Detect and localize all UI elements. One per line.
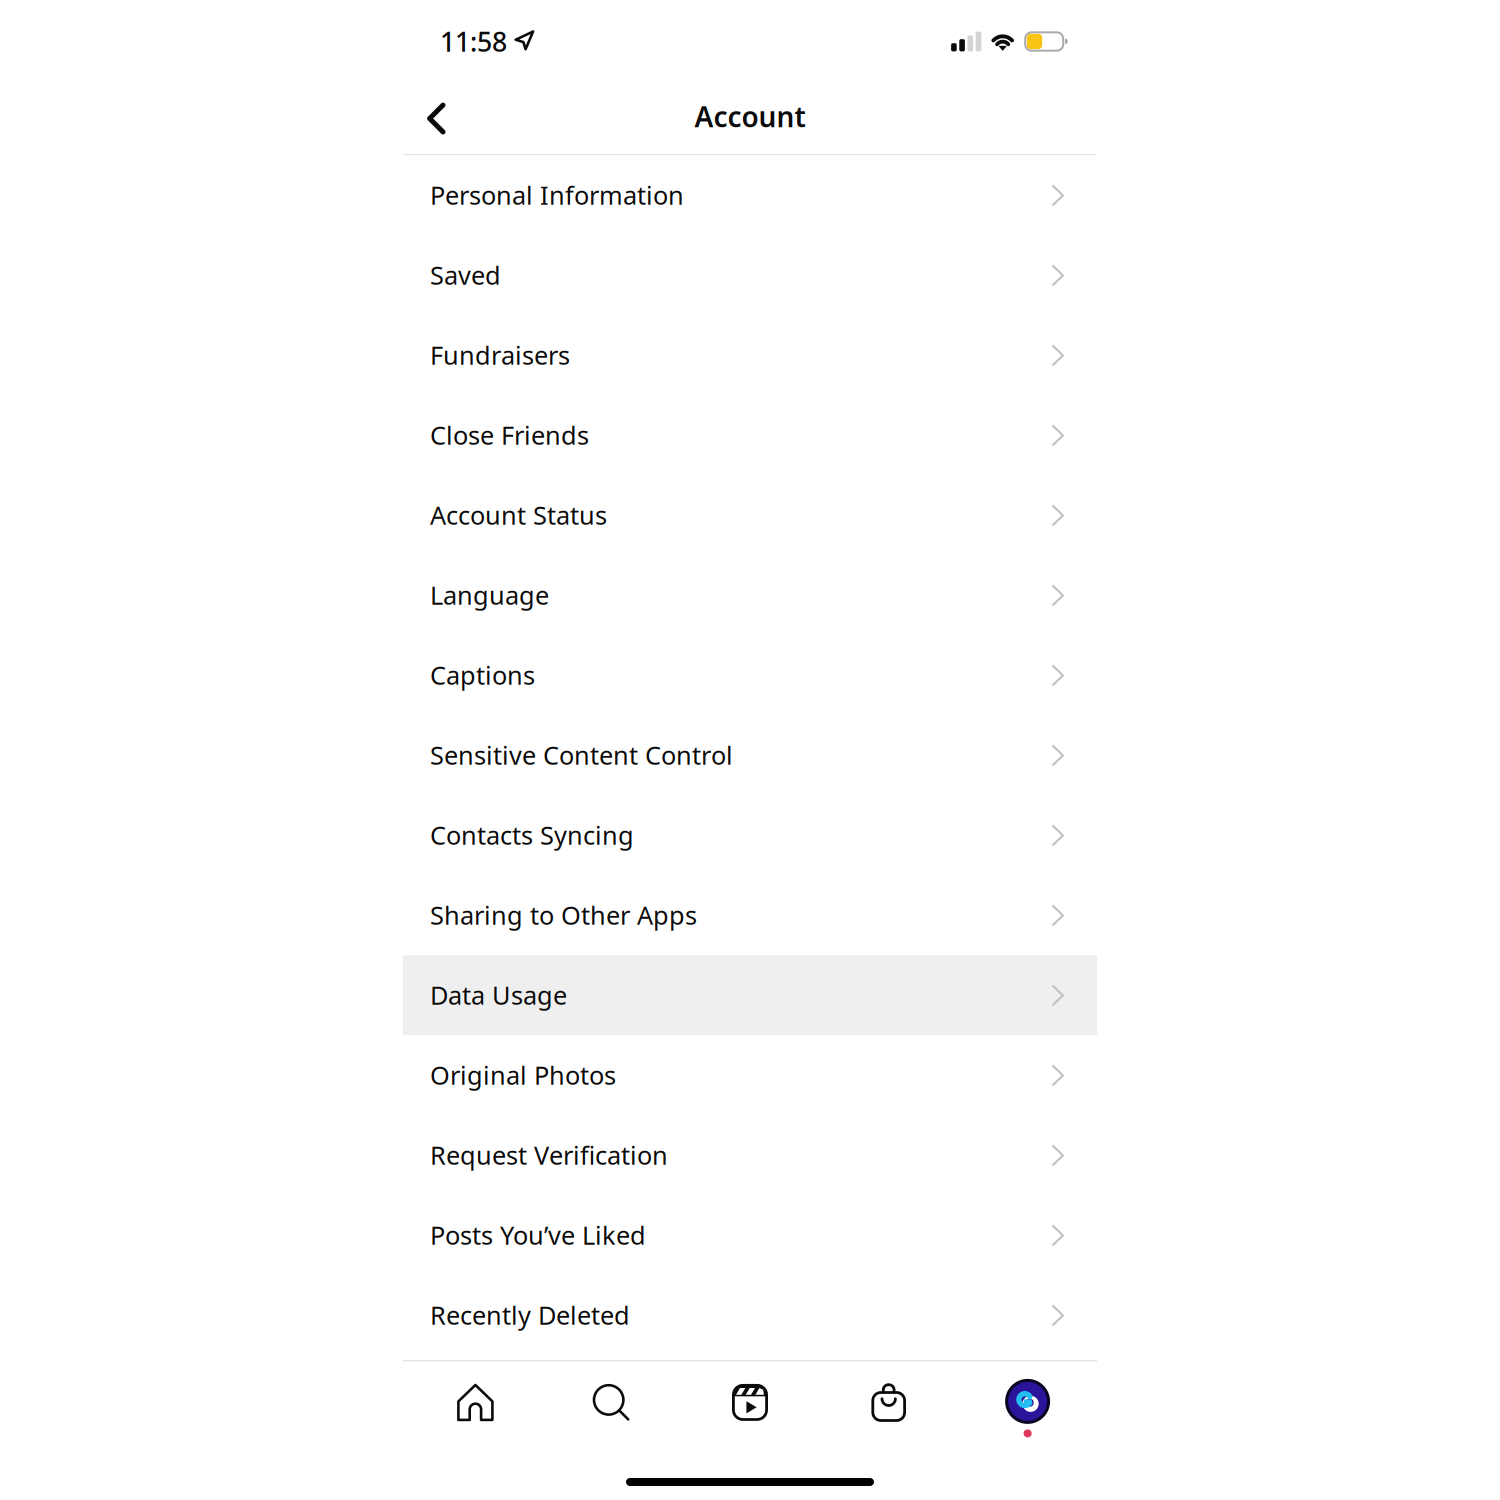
staticText: Fundraisers xyxy=(430,338,570,372)
button[interactable]: Reels xyxy=(681,1361,819,1443)
staticText: Data Usage xyxy=(430,978,567,1012)
button[interactable]: Data Usage xyxy=(403,955,1097,1035)
button[interactable]: Account Status xyxy=(403,475,1097,555)
staticText: 11:58 xyxy=(440,24,507,59)
staticText: Account xyxy=(694,98,805,135)
button[interactable]: Contacts Syncing xyxy=(403,795,1097,875)
button[interactable]: Search xyxy=(542,1361,681,1443)
button[interactable]: Personal Information xyxy=(403,155,1097,235)
staticText: Saved xyxy=(430,258,501,292)
button[interactable]: Request Verification xyxy=(403,1115,1097,1195)
staticText: Account Status xyxy=(430,498,607,532)
button[interactable]: Sharing to Other Apps xyxy=(403,875,1097,955)
staticText: Sharing to Other Apps xyxy=(430,898,697,932)
button[interactable]: Home xyxy=(403,1361,542,1443)
button[interactable]: Language xyxy=(403,555,1097,635)
button[interactable]: Original Photos xyxy=(403,1035,1097,1115)
staticText: Posts You’ve Liked xyxy=(430,1218,646,1252)
button[interactable]: Posts You’ve Liked xyxy=(403,1195,1097,1275)
button[interactable]: Profile xyxy=(958,1361,1097,1443)
staticText: Request Verification xyxy=(430,1138,668,1172)
button[interactable]: Fundraisers xyxy=(403,315,1097,395)
button[interactable]: Saved xyxy=(403,235,1097,315)
staticText: Original Photos xyxy=(430,1058,616,1092)
staticText: Personal Information xyxy=(430,178,684,212)
staticText: Close Friends xyxy=(430,418,589,452)
button[interactable]: Captions xyxy=(403,635,1097,715)
staticText: Recently Deleted xyxy=(430,1298,630,1332)
button[interactable]: Close Friends xyxy=(403,395,1097,475)
staticText: Contacts Syncing xyxy=(430,818,634,852)
staticText: Sensitive Content Control xyxy=(430,738,733,772)
button[interactable]: Back xyxy=(403,90,463,146)
button[interactable]: Sensitive Content Control xyxy=(403,715,1097,795)
button[interactable]: Recently Deleted xyxy=(403,1275,1097,1355)
staticText: Captions xyxy=(430,658,535,692)
staticText: Language xyxy=(430,578,549,612)
button[interactable]: Shop xyxy=(819,1361,958,1443)
